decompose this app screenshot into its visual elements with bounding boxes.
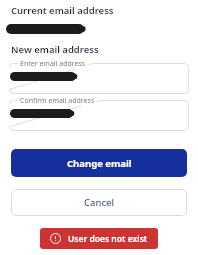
staticText: Current email address — [11, 4, 114, 17]
staticText: Cancel — [84, 196, 115, 209]
staticText: Enter email address — [20, 59, 86, 69]
button[interactable]: Error — [40, 228, 158, 249]
button[interactable]: Enter email address — [9, 63, 189, 94]
button[interactable]: Change email — [11, 149, 187, 177]
staticText: Change email — [67, 157, 132, 170]
staticText: Confirm email address — [20, 96, 95, 106]
staticText: New email address — [11, 43, 99, 56]
staticText: User does not exist — [68, 233, 148, 245]
button[interactable]: Cancel — [11, 189, 187, 216]
button[interactable]: Confirm email address — [9, 100, 189, 131]
other: Error — [50, 233, 61, 244]
